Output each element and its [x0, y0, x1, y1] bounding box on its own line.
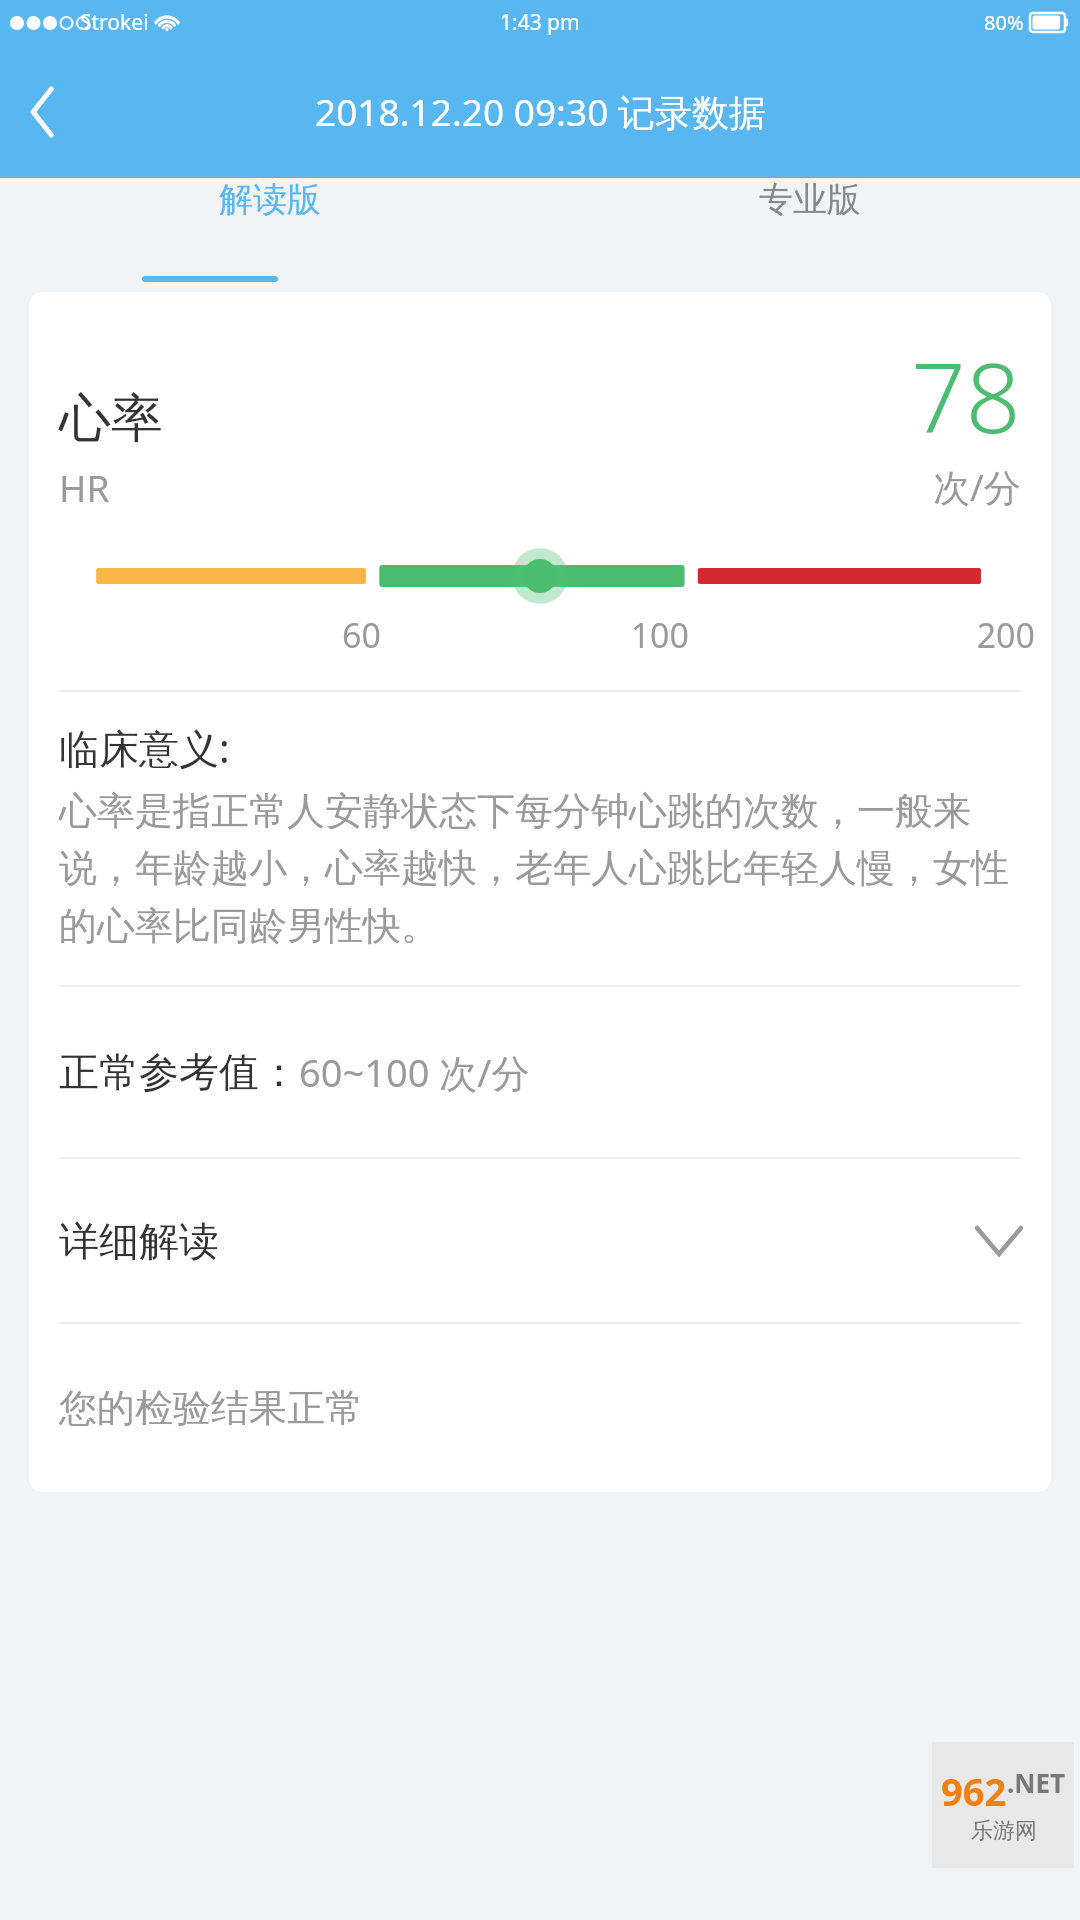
staticText: 心率 — [59, 386, 163, 452]
staticText: 100 — [569, 612, 689, 658]
staticText: 60 — [291, 612, 381, 658]
staticText: 解读版 — [219, 178, 321, 221]
staticText: 80% — [984, 9, 1024, 36]
staticText: 专业版 — [759, 178, 861, 221]
staticText: 1:43 pm — [500, 8, 580, 37]
staticText: 心率是指正常人安静状态下每分钟心跳的次数，一般来说，年龄越小，心率越快，老年人心… — [59, 787, 1021, 951]
staticText: 您的检验结果正常 — [59, 1384, 363, 1432]
button[interactable]: 详细解读 — [29, 1159, 1051, 1322]
staticText: 乐游网 — [971, 1817, 1037, 1845]
staticText: 次/分 — [933, 461, 1021, 512]
staticText: 详细解读 — [59, 1216, 977, 1266]
staticText: Strokei — [80, 8, 149, 37]
staticText: 2018.12.20 09:30 记录数据 — [315, 86, 766, 137]
button[interactable]: 解读版 — [0, 178, 540, 221]
staticText: .NET — [1007, 1765, 1066, 1800]
staticText: 正常参考值： — [59, 1047, 299, 1097]
staticText: 78 — [911, 330, 1021, 461]
staticText: HR — [59, 462, 110, 512]
staticText: 临床意义: — [59, 720, 230, 775]
staticText: 60~100 次/分 — [299, 1046, 530, 1098]
staticText: 200 — [915, 612, 1035, 658]
button[interactable]: Back — [0, 69, 86, 155]
button[interactable]: 专业版 — [540, 178, 1080, 221]
staticText: 962 — [941, 1765, 1007, 1817]
